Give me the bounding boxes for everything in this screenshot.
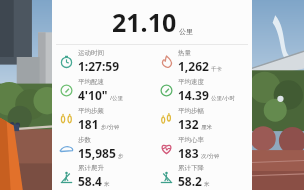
staticText: 平均配速 bbox=[78, 78, 104, 86]
other: 热量 bbox=[159, 54, 174, 69]
other: 平均步频 bbox=[59, 112, 74, 127]
staticText: 步/分钟 bbox=[101, 123, 120, 131]
other: 平均配速 bbox=[59, 83, 74, 98]
staticText: 运动时间 bbox=[78, 49, 104, 57]
staticText: 步数 bbox=[78, 136, 91, 144]
button[interactable]: 平均步频 bbox=[52, 105, 152, 134]
staticText: 21.10 bbox=[112, 5, 177, 39]
staticText: 平均心率 bbox=[178, 136, 204, 144]
button[interactable]: 平均速度 bbox=[152, 76, 252, 105]
staticText: 4'10" bbox=[78, 87, 108, 103]
button[interactable]: 累计下降 bbox=[152, 163, 252, 190]
button[interactable]: 平均配速 bbox=[52, 76, 152, 105]
staticText: 平均步幅 bbox=[178, 107, 204, 115]
other: 累计下降 bbox=[159, 169, 174, 184]
staticText: 千卡 bbox=[211, 66, 222, 73]
button[interactable]: 累计爬升 bbox=[52, 163, 152, 190]
button[interactable]: 运动时间 bbox=[52, 47, 152, 76]
staticText: 厘米 bbox=[201, 124, 212, 131]
staticText: 58.4 bbox=[78, 173, 102, 189]
other: 运动时间 bbox=[59, 54, 74, 69]
other: 平均心率 bbox=[159, 141, 174, 156]
button[interactable]: 平均心率 bbox=[152, 134, 252, 163]
other: 平均步幅 bbox=[159, 112, 174, 127]
staticText: 米 bbox=[204, 181, 210, 188]
staticText: 183 bbox=[178, 145, 199, 161]
staticText: 1,262 bbox=[178, 58, 209, 74]
staticText: 累计下降 bbox=[178, 164, 204, 172]
staticText: 58.2 bbox=[178, 173, 202, 189]
staticText: 次/分钟 bbox=[201, 152, 220, 160]
staticText: 1:27:59 bbox=[78, 58, 120, 74]
button[interactable]: 热量 bbox=[152, 47, 252, 76]
staticText: 米 bbox=[104, 181, 110, 188]
staticText: 热量 bbox=[178, 49, 191, 57]
staticText: 15,985 bbox=[78, 145, 116, 161]
button[interactable]: 平均步幅 bbox=[152, 105, 252, 134]
staticText: 平均步频 bbox=[78, 107, 104, 115]
staticText: 步 bbox=[118, 153, 124, 160]
staticText: 181 bbox=[78, 116, 99, 132]
staticText: 公里/小时 bbox=[211, 94, 236, 102]
other: 累计爬升 bbox=[59, 169, 74, 184]
other: 平均速度 bbox=[159, 83, 174, 98]
staticText: 累计爬升 bbox=[78, 164, 104, 172]
staticText: 平均速度 bbox=[178, 78, 204, 86]
other: 步数 bbox=[59, 141, 74, 156]
staticText: 132 bbox=[178, 116, 199, 132]
staticText: 公里 bbox=[179, 27, 193, 36]
button[interactable]: 步数 bbox=[52, 134, 152, 163]
staticText: /公里 bbox=[110, 94, 124, 102]
staticText: 14.39 bbox=[178, 87, 209, 103]
